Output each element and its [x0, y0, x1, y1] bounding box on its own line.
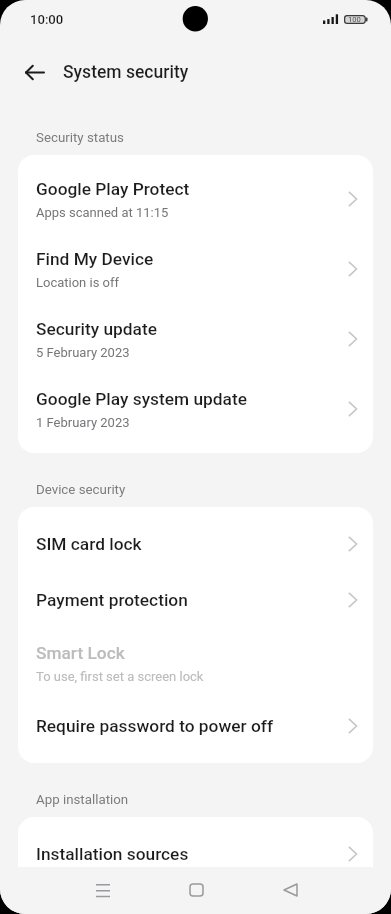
staticText: Google Play Protect [36, 179, 190, 199]
button[interactable]: Security update [18, 304, 373, 374]
staticText: Device security [36, 482, 126, 498]
button[interactable]: Back [12, 50, 57, 95]
button[interactable]: SIM card lock [18, 516, 373, 572]
button[interactable]: Installation sources [18, 826, 373, 867]
button[interactable]: Smart Lock [18, 628, 373, 698]
staticText: Location is off [36, 275, 120, 290]
staticText: 1 February 2023 [36, 415, 130, 430]
staticText: Smart Lock [36, 643, 125, 663]
staticText: Installation sources [36, 844, 189, 864]
staticText: Find My Device [36, 249, 154, 269]
button[interactable]: Recents [56, 867, 149, 912]
staticText: App installation [36, 792, 129, 808]
staticText: Google Play system update [36, 389, 247, 409]
staticText: To use, first set a screen lock [36, 669, 204, 684]
staticText: Security status [36, 130, 124, 146]
staticText: Require password to power off [36, 716, 274, 736]
staticText: Security update [36, 319, 157, 339]
button[interactable]: Back [243, 867, 337, 912]
staticText: System security [63, 62, 189, 83]
staticText: Apps scanned at 11:15 [36, 205, 169, 220]
button[interactable]: Payment protection [18, 572, 373, 628]
button[interactable]: Home [149, 867, 243, 912]
button[interactable]: Google Play system update [18, 374, 373, 444]
staticText: 100 [348, 15, 361, 24]
button[interactable]: Require password to power off [18, 698, 373, 754]
button[interactable]: Google Play Protect [18, 164, 373, 234]
staticText: Payment protection [36, 590, 188, 610]
staticText: 5 February 2023 [36, 345, 130, 360]
staticText: 10:00 [30, 12, 64, 27]
button[interactable]: Find My Device [18, 234, 373, 304]
staticText: SIM card lock [36, 534, 142, 554]
